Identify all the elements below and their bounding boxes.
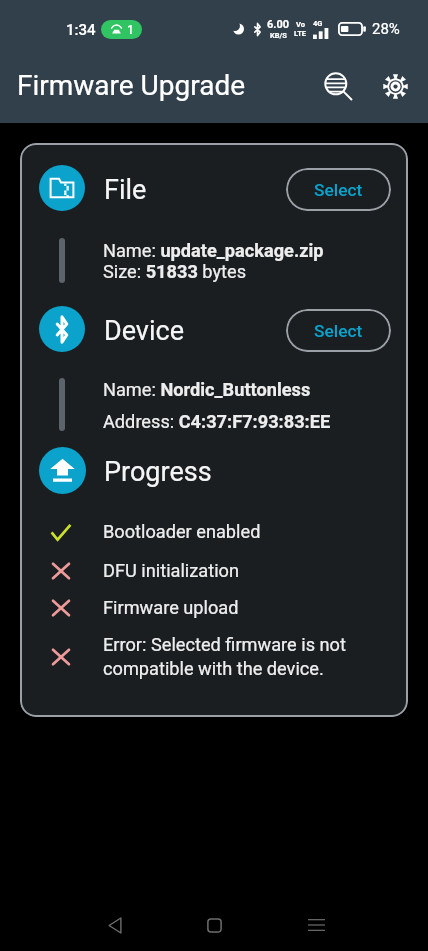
staticText: 6.00	[267, 18, 290, 31]
staticText: Address: C4:37:F7:93:83:EE	[103, 411, 331, 432]
staticText: 1	[127, 23, 134, 37]
staticText: Bootloader enabled	[103, 521, 261, 542]
button[interactable]: Select	[286, 168, 391, 211]
staticText: LTE	[294, 29, 307, 38]
staticText: Select	[314, 321, 363, 341]
staticText: Error: Selected firmware is not compatib…	[103, 634, 346, 679]
button[interactable]: Home	[190, 901, 238, 949]
button[interactable]: Settings	[372, 63, 418, 109]
staticText: Firmware Upgrade	[17, 69, 246, 102]
staticText: KB/S	[270, 31, 287, 40]
staticText: Size: 51833 bytes	[103, 261, 247, 282]
staticText: 4G	[313, 19, 323, 28]
staticText: 28%	[372, 20, 400, 38]
button[interactable]: Back	[91, 901, 139, 949]
staticText: Select	[314, 180, 363, 200]
staticText: Progress	[104, 456, 212, 488]
staticText: Name: update_package.zip	[103, 240, 324, 261]
staticText: Vo	[296, 20, 305, 29]
staticText: 1:34	[66, 21, 96, 39]
staticText: File	[104, 174, 147, 206]
staticText: DFU initialization	[103, 560, 239, 581]
staticText: Name: Nordic_Buttonless	[103, 379, 311, 400]
staticText: Device	[104, 315, 184, 347]
button[interactable]: Search	[315, 63, 361, 109]
button[interactable]: Select	[286, 309, 391, 352]
staticText: Firmware upload	[103, 597, 239, 618]
button[interactable]: Recent apps	[292, 901, 340, 949]
